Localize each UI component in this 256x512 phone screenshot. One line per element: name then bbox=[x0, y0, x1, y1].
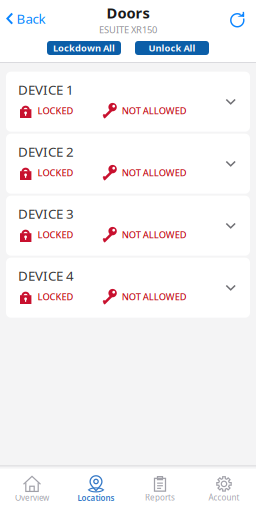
staticText: Locations bbox=[77, 492, 114, 503]
button[interactable]: Reports bbox=[128, 467, 192, 507]
staticText: Back bbox=[17, 10, 46, 27]
staticText: NOT ALLOWED bbox=[122, 166, 187, 179]
staticText: LOCKED bbox=[37, 166, 73, 179]
staticText: DEVICE 4 bbox=[18, 267, 74, 284]
button[interactable]: Refresh bbox=[220, 0, 256, 32]
staticText: NOT ALLOWED bbox=[122, 290, 187, 303]
button[interactable]: DEVICE 3 bbox=[6, 196, 250, 256]
button[interactable]: Back bbox=[0, 0, 56, 34]
staticText: NOT ALLOWED bbox=[122, 104, 187, 117]
button[interactable]: Overview bbox=[0, 466, 64, 507]
staticText: Doors bbox=[106, 3, 149, 23]
staticText: LOCKED bbox=[37, 290, 73, 303]
button[interactable]: DEVICE 4 bbox=[6, 258, 250, 318]
button[interactable]: DEVICE 1 bbox=[6, 72, 250, 132]
staticText: NOT ALLOWED bbox=[122, 228, 187, 241]
button[interactable]: Unlock All bbox=[135, 41, 209, 55]
staticText: DEVICE 3 bbox=[18, 205, 74, 222]
staticText: LOCKED bbox=[37, 104, 73, 117]
button[interactable]: DEVICE 2 bbox=[6, 134, 250, 194]
staticText: Reports bbox=[145, 492, 175, 503]
button[interactable]: Locations bbox=[64, 466, 128, 507]
button[interactable]: Account bbox=[192, 467, 256, 507]
staticText: LOCKED bbox=[37, 228, 73, 241]
staticText: DEVICE 1 bbox=[18, 81, 74, 98]
staticText: Account bbox=[208, 492, 239, 503]
staticText: DEVICE 2 bbox=[18, 143, 74, 160]
button[interactable]: Lockdown All bbox=[47, 41, 121, 55]
staticText: Lockdown All bbox=[53, 42, 115, 54]
staticText: Overview bbox=[15, 492, 49, 503]
staticText: Unlock All bbox=[148, 42, 195, 54]
staticText: ESUITE XR150 bbox=[99, 23, 157, 36]
